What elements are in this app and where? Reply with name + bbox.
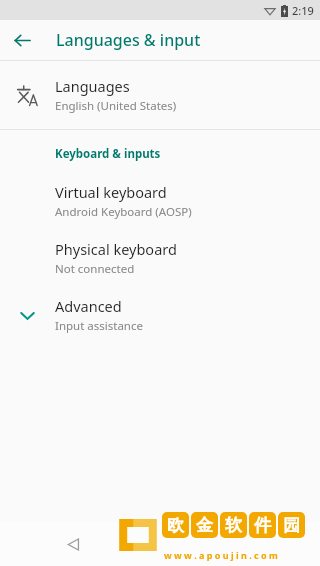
button[interactable]: Advanced xyxy=(0,293,320,337)
staticText: 欧 xyxy=(167,515,184,536)
staticText: 金 xyxy=(196,515,213,536)
staticText: English (United States) xyxy=(55,98,177,114)
staticText: Keyboard & inputs xyxy=(55,146,161,162)
staticText: Input assistance xyxy=(55,318,143,334)
staticText: 园 xyxy=(283,515,300,536)
button[interactable]: Physical keyboard xyxy=(0,236,320,280)
staticText: 件 xyxy=(254,515,271,536)
button[interactable]: Virtual keyboard xyxy=(0,179,320,223)
button[interactable]: Languages xyxy=(0,69,320,121)
staticText: Advanced xyxy=(55,296,122,316)
button[interactable]: Back xyxy=(6,24,38,56)
staticText: Languages xyxy=(55,76,130,96)
staticText: Android Keyboard (AOSP) xyxy=(55,204,192,220)
staticText: 2:19 xyxy=(292,3,314,18)
staticText: 软 xyxy=(225,515,242,536)
staticText: Virtual keyboard xyxy=(55,182,167,202)
button[interactable]: Back xyxy=(58,529,88,559)
staticText: Physical keyboard xyxy=(55,239,177,259)
staticText: Not connected xyxy=(55,261,135,277)
staticText: Languages & input xyxy=(56,29,201,51)
staticText: w w w . a p o u j i n . c o m xyxy=(164,549,278,561)
